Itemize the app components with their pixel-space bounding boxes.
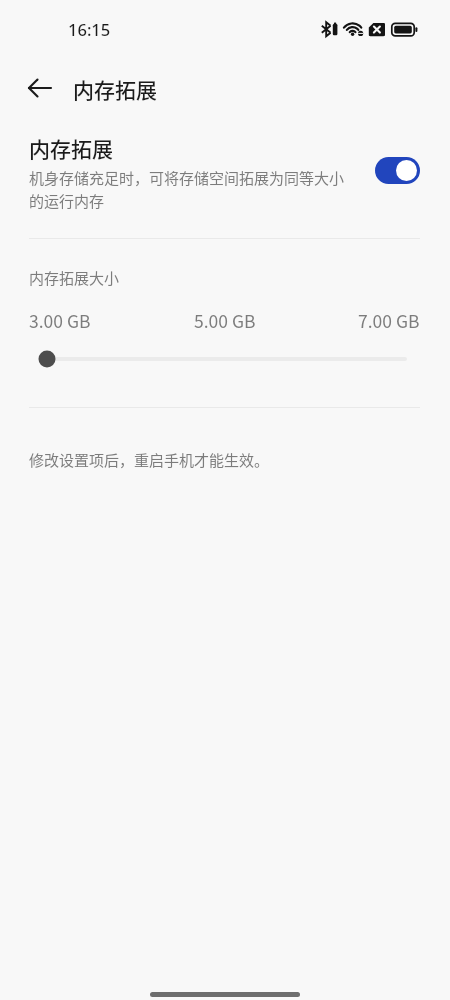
staticText: 7.00 GB xyxy=(358,308,420,333)
button[interactable]: 内存拓展大小 滑块 xyxy=(32,345,418,373)
staticText: 内存拓展 xyxy=(73,74,157,104)
button[interactable]: 内存拓展 xyxy=(0,120,450,230)
staticText: 修改设置项后，重启手机才能生效。 xyxy=(29,449,270,471)
staticText: 内存拓展大小 xyxy=(29,267,120,289)
button[interactable]: 内存拓展 开关 xyxy=(375,157,420,184)
staticText: 5.00 GB xyxy=(194,308,256,333)
staticText: 16:15 xyxy=(68,18,111,40)
staticText: 内存拓展 xyxy=(29,133,113,163)
staticText: 机身存储充足时，可将存储空间拓展为同等大小的运行内存 xyxy=(29,167,349,211)
staticText: 3.00 GB xyxy=(29,308,91,333)
button[interactable]: Back xyxy=(18,66,62,110)
